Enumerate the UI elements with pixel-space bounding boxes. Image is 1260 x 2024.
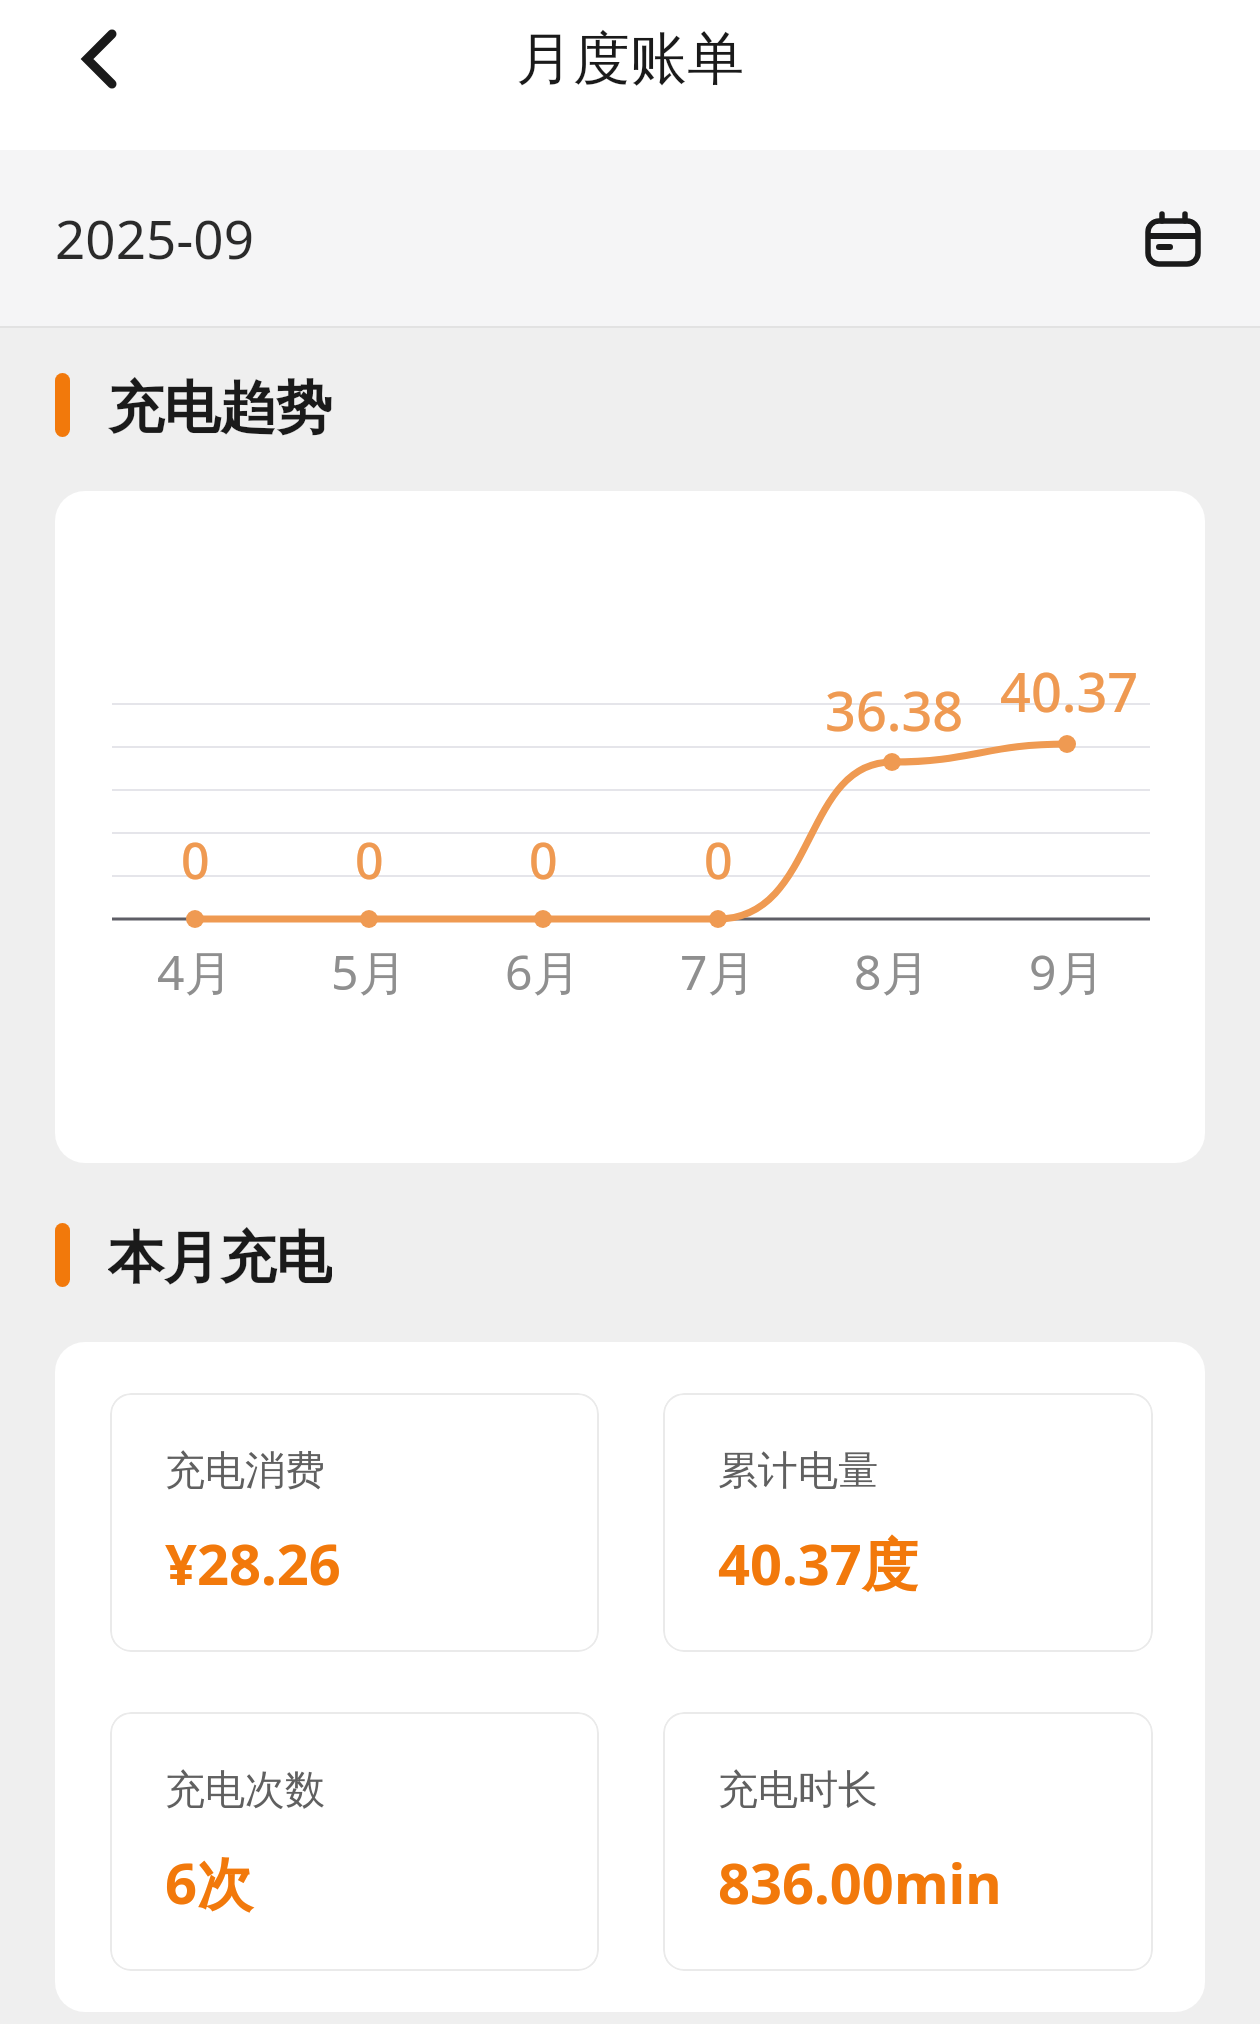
staticText: 本月充电 bbox=[108, 1223, 332, 1287]
staticText: 836.00min bbox=[718, 1844, 1002, 1920]
staticText: 充电时长 bbox=[718, 1764, 878, 1814]
staticText: 5月 bbox=[331, 939, 407, 1005]
staticText: 2025-09 bbox=[55, 202, 254, 274]
staticText: 6次 bbox=[165, 1844, 254, 1920]
button[interactable]: 累计电量 bbox=[663, 1393, 1153, 1652]
staticText: 0 bbox=[181, 826, 210, 894]
staticText: 0 bbox=[704, 826, 733, 894]
staticText: 4月 bbox=[157, 939, 233, 1005]
button[interactable]: 充电时长 bbox=[663, 1712, 1153, 1971]
staticText: ¥28.26 bbox=[165, 1525, 341, 1601]
button[interactable]: 充电次数 bbox=[110, 1712, 599, 1971]
staticText: 累计电量 bbox=[718, 1445, 878, 1495]
staticText: 40.37 bbox=[1000, 654, 1139, 724]
button[interactable] bbox=[55, 10, 145, 110]
staticText: 8月 bbox=[854, 939, 930, 1005]
staticText: 36.38 bbox=[825, 673, 964, 743]
staticText: 6月 bbox=[505, 939, 581, 1005]
staticText: 0 bbox=[355, 826, 384, 894]
staticText: 月度账单 bbox=[516, 23, 744, 95]
staticText: 充电消费 bbox=[165, 1445, 325, 1495]
staticText: 充电次数 bbox=[165, 1764, 325, 1814]
staticText: 0 bbox=[529, 826, 558, 894]
button[interactable]: 充电消费 bbox=[110, 1393, 599, 1652]
staticText: 9月 bbox=[1029, 939, 1105, 1005]
button[interactable]: 2025-09 bbox=[0, 150, 1260, 326]
staticText: 7月 bbox=[680, 939, 756, 1005]
staticText: 充电趋势 bbox=[108, 373, 332, 437]
staticText: 40.37度 bbox=[718, 1525, 918, 1601]
